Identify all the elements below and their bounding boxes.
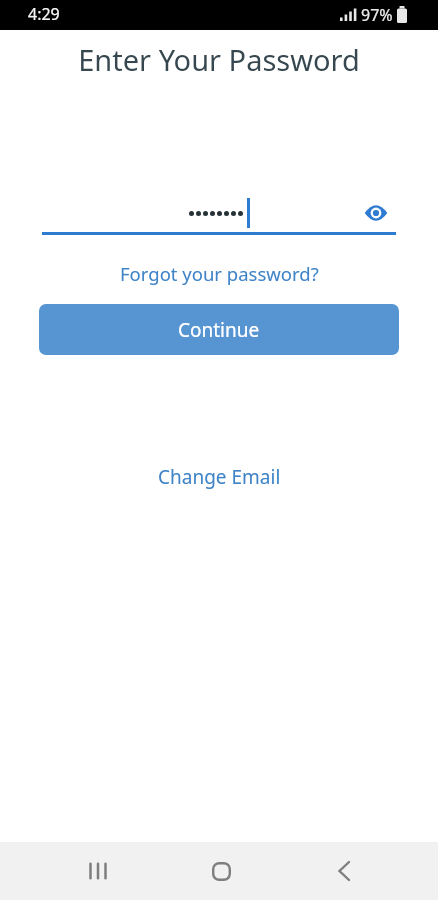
- staticText: 97%: [361, 4, 393, 26]
- button[interactable]: Continue: [39, 304, 399, 355]
- button[interactable]: [69, 842, 127, 900]
- button[interactable]: [361, 198, 391, 228]
- staticText: Continue: [178, 317, 260, 343]
- staticText: Forgot your password?: [120, 261, 319, 286]
- staticText: 4:29: [28, 3, 60, 25]
- staticText: Enter Your Password: [0, 40, 438, 79]
- staticText: Change Email: [158, 464, 281, 490]
- button[interactable]: Forgot your password?: [120, 261, 319, 286]
- button[interactable]: [315, 842, 373, 900]
- button[interactable]: Change Email: [158, 464, 281, 490]
- button[interactable]: [192, 842, 250, 900]
